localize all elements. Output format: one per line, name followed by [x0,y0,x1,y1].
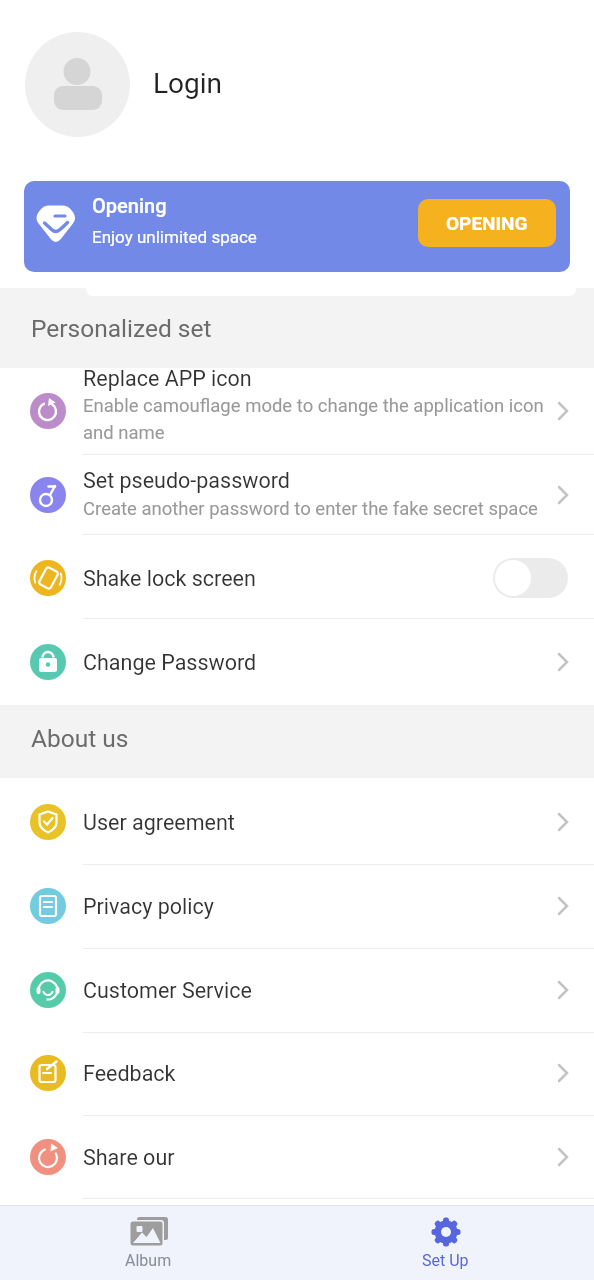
staticText: Album [125,1251,172,1270]
button[interactable] [0,864,594,948]
staticText: and name [83,422,165,444]
button[interactable] [0,618,594,705]
button[interactable] [0,778,594,864]
staticText: Login [153,67,223,100]
staticText: User agreement [83,810,235,835]
button[interactable]: Login [0,20,594,150]
staticText: Customer Service [83,978,252,1003]
button[interactable] [0,1032,594,1115]
button[interactable] [0,948,594,1032]
staticText: Enable camouflage mode to change the app… [83,395,544,417]
staticText: Set Up [422,1251,469,1270]
staticText: Feedback [83,1061,176,1086]
staticText: Set pseudo-password [83,468,290,493]
button[interactable] [493,558,568,598]
staticText: Replace APP icon [83,366,252,391]
staticText: Enjoy unlimited space [92,227,257,247]
staticText: Shake lock screen [83,566,256,591]
staticText: Share our [83,1145,175,1170]
staticText: About us [31,724,129,753]
button[interactable]: OPENING [418,199,556,247]
button[interactable] [0,534,594,618]
staticText: Create another password to enter the fak… [83,498,538,520]
staticText: Privacy policy [83,894,215,919]
staticText: Personalized set [31,314,212,343]
staticText: OPENING [446,212,528,234]
button[interactable] [0,368,594,454]
button[interactable]: Opening [24,181,570,272]
button[interactable]: Set Up [297,1206,594,1280]
button[interactable] [0,1115,594,1198]
staticText: Change Password [83,650,257,675]
button[interactable] [0,454,594,534]
button[interactable]: Album [0,1206,297,1280]
staticText: Opening [92,194,167,217]
